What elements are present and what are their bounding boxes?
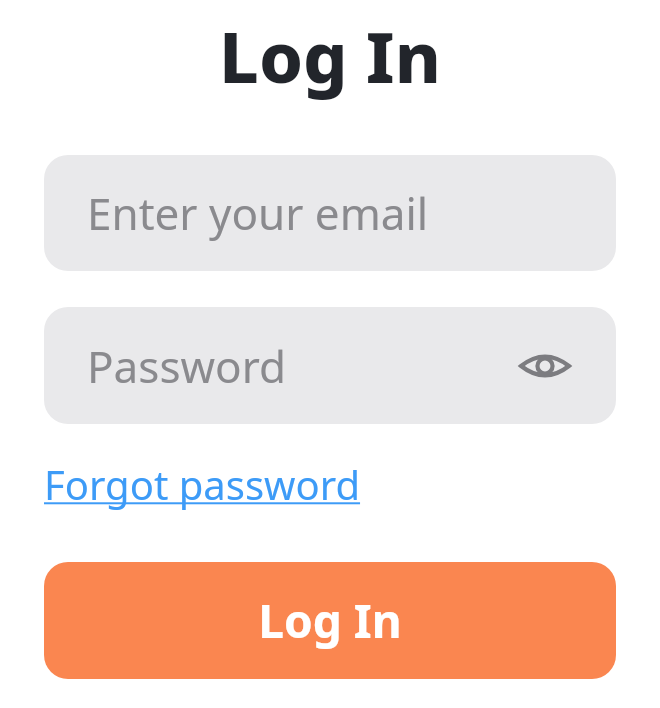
button[interactable]: Password — [44, 307, 616, 424]
button[interactable]: Enter your email — [44, 155, 616, 271]
staticText: Log In — [219, 8, 441, 103]
button[interactable]: Show password — [517, 338, 573, 394]
staticText: Password — [87, 336, 287, 396]
staticText: Log In — [258, 589, 402, 652]
staticText: Forgot password — [44, 457, 361, 511]
button[interactable]: Log In — [44, 562, 616, 679]
button[interactable]: Forgot password — [44, 457, 361, 511]
staticText: Enter your email — [87, 183, 429, 243]
